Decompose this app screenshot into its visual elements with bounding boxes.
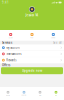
- staticText: Cards: [21, 94, 26, 96]
- button[interactable]: Transactions: [0, 51, 64, 57]
- button[interactable]: Scan: [0, 33, 21, 39]
- staticText: Me: [55, 94, 57, 96]
- button[interactable]: Home: [0, 91, 16, 96]
- staticText: Pay: [30, 37, 33, 39]
- staticText: Services: [2, 41, 12, 44]
- button[interactable]: Upgrade now: [1, 67, 63, 74]
- staticText: Stats: [38, 94, 41, 96]
- staticText: My account: [6, 46, 20, 49]
- staticText: Send: [51, 37, 55, 39]
- staticText: Scan: [9, 37, 13, 39]
- staticText: 9:41: [2, 1, 9, 4]
- button[interactable]: Cards: [16, 91, 32, 96]
- staticText: Transactions: [6, 52, 21, 56]
- button[interactable]: Rewards: [0, 57, 64, 63]
- button[interactable]: Send: [43, 33, 64, 39]
- button[interactable]: Stats: [32, 91, 48, 96]
- button[interactable]: My account: [0, 45, 64, 51]
- button[interactable]: Me: [48, 91, 64, 96]
- staticText: Home: [6, 94, 10, 96]
- staticText: Offers: [2, 63, 10, 67]
- button[interactable]: See all: [53, 41, 62, 44]
- staticText: See all: [53, 41, 62, 44]
- staticText: Jessica M.: [25, 13, 38, 17]
- staticText: Upgrade now: [22, 69, 42, 72]
- staticText: Rewards: [6, 58, 16, 62]
- button[interactable]: Pay: [21, 33, 43, 39]
